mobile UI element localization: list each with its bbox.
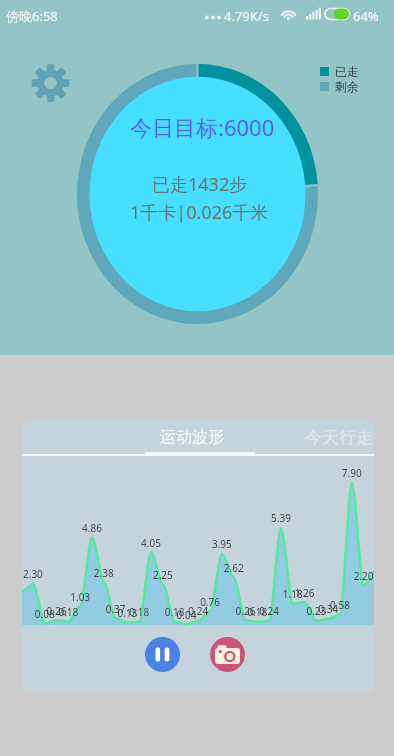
staticText: 运动波形 bbox=[160, 427, 224, 447]
staticText: 今日目标:6000 bbox=[130, 112, 275, 142]
staticText: 剩余 bbox=[335, 79, 359, 94]
staticText: 4.79K/s bbox=[224, 7, 269, 25]
button[interactable] bbox=[210, 637, 245, 672]
button[interactable] bbox=[145, 637, 180, 672]
staticText: 傍晚6:58 bbox=[6, 7, 58, 25]
staticText: 已走1432步 bbox=[152, 172, 248, 197]
button[interactable] bbox=[32, 64, 70, 102]
staticText: 64% bbox=[353, 7, 379, 25]
staticText: 1千卡|0.026千米 bbox=[130, 200, 269, 225]
staticText: 已走 bbox=[335, 64, 359, 79]
button[interactable]: 运动波形 bbox=[137, 423, 247, 451]
button[interactable]: 今天行走 bbox=[274, 423, 374, 451]
staticText: 今天行走 bbox=[305, 427, 373, 448]
